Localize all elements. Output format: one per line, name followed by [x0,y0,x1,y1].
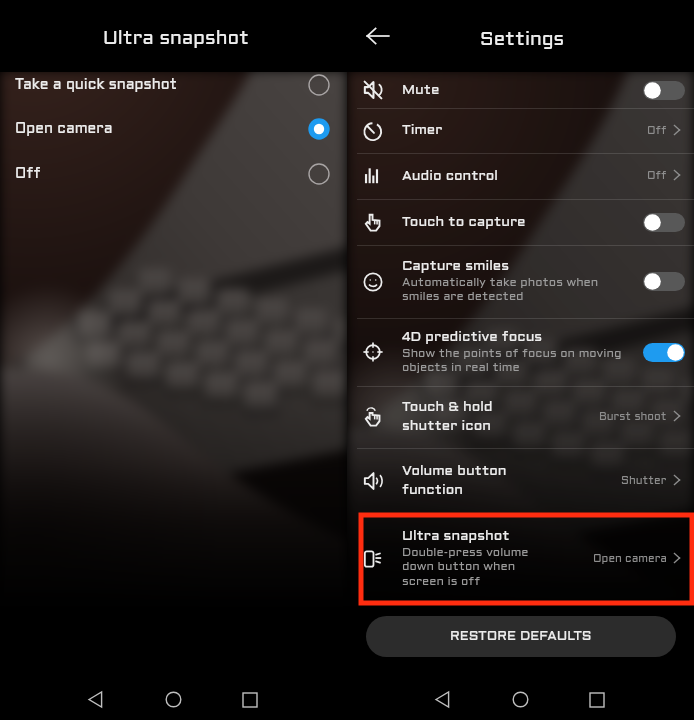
staticText: Show the points of focus on moving objec… [402,348,622,374]
button[interactable]: Audio control [347,153,694,199]
button[interactable]: Turn on [643,272,685,291]
button[interactable]: 4D predictive focus [347,318,694,386]
button[interactable]: Back [357,15,399,57]
button[interactable]: Back [420,677,466,720]
button[interactable]: Volume button function [347,448,694,514]
staticText: Open camera [593,554,667,564]
staticText: Automatically take photos when smiles ar… [402,277,599,303]
button[interactable]: Mute [347,72,694,108]
staticText: Burst shoot [599,412,667,422]
staticText: Audio control [402,170,498,183]
button[interactable]: Open camera [0,107,347,151]
button[interactable]: Recents [574,677,620,720]
staticText: Double-press volume down button when scr… [402,547,529,588]
staticText: Capture smiles [402,260,510,273]
button[interactable]: Turn off [643,343,685,362]
staticText: Off [15,168,308,181]
button[interactable]: Back [73,677,119,720]
button[interactable]: Turn on [643,81,685,100]
staticText: Settings [480,31,565,49]
staticText: Shutter [621,476,667,486]
button[interactable]: Off [0,152,347,196]
button[interactable]: Timer [347,108,694,153]
button[interactable]: Recents [227,677,273,720]
staticText: Ultra snapshot [103,30,249,48]
button[interactable]: Take a quick snapshot [0,63,347,107]
button[interactable]: Capture smiles [347,245,694,318]
staticText: Ultra snapshot [402,530,510,543]
staticText: Touch & hold shutter icon [402,401,493,433]
staticText: Touch to capture [402,216,526,229]
staticText: Mute [402,84,440,97]
staticText: RESTORE DEFAULTS [450,630,592,643]
staticText: 4D predictive focus [402,331,543,344]
staticText: Timer [402,124,443,137]
button[interactable]: Home [497,677,543,720]
button[interactable]: Turn on [643,213,685,232]
staticText: Volume button function [402,465,507,497]
button[interactable]: Ultra snapshot [347,515,694,603]
button[interactable]: Touch & hold shutter icon [347,386,694,448]
staticText: Off [647,126,667,136]
button[interactable]: Touch to capture [347,199,694,245]
button[interactable]: Home [150,677,196,720]
staticText: Take a quick snapshot [15,79,308,92]
staticText: Off [647,171,667,181]
button[interactable]: RESTORE DEFAULTS [366,616,676,657]
staticText: Open camera [15,123,308,136]
